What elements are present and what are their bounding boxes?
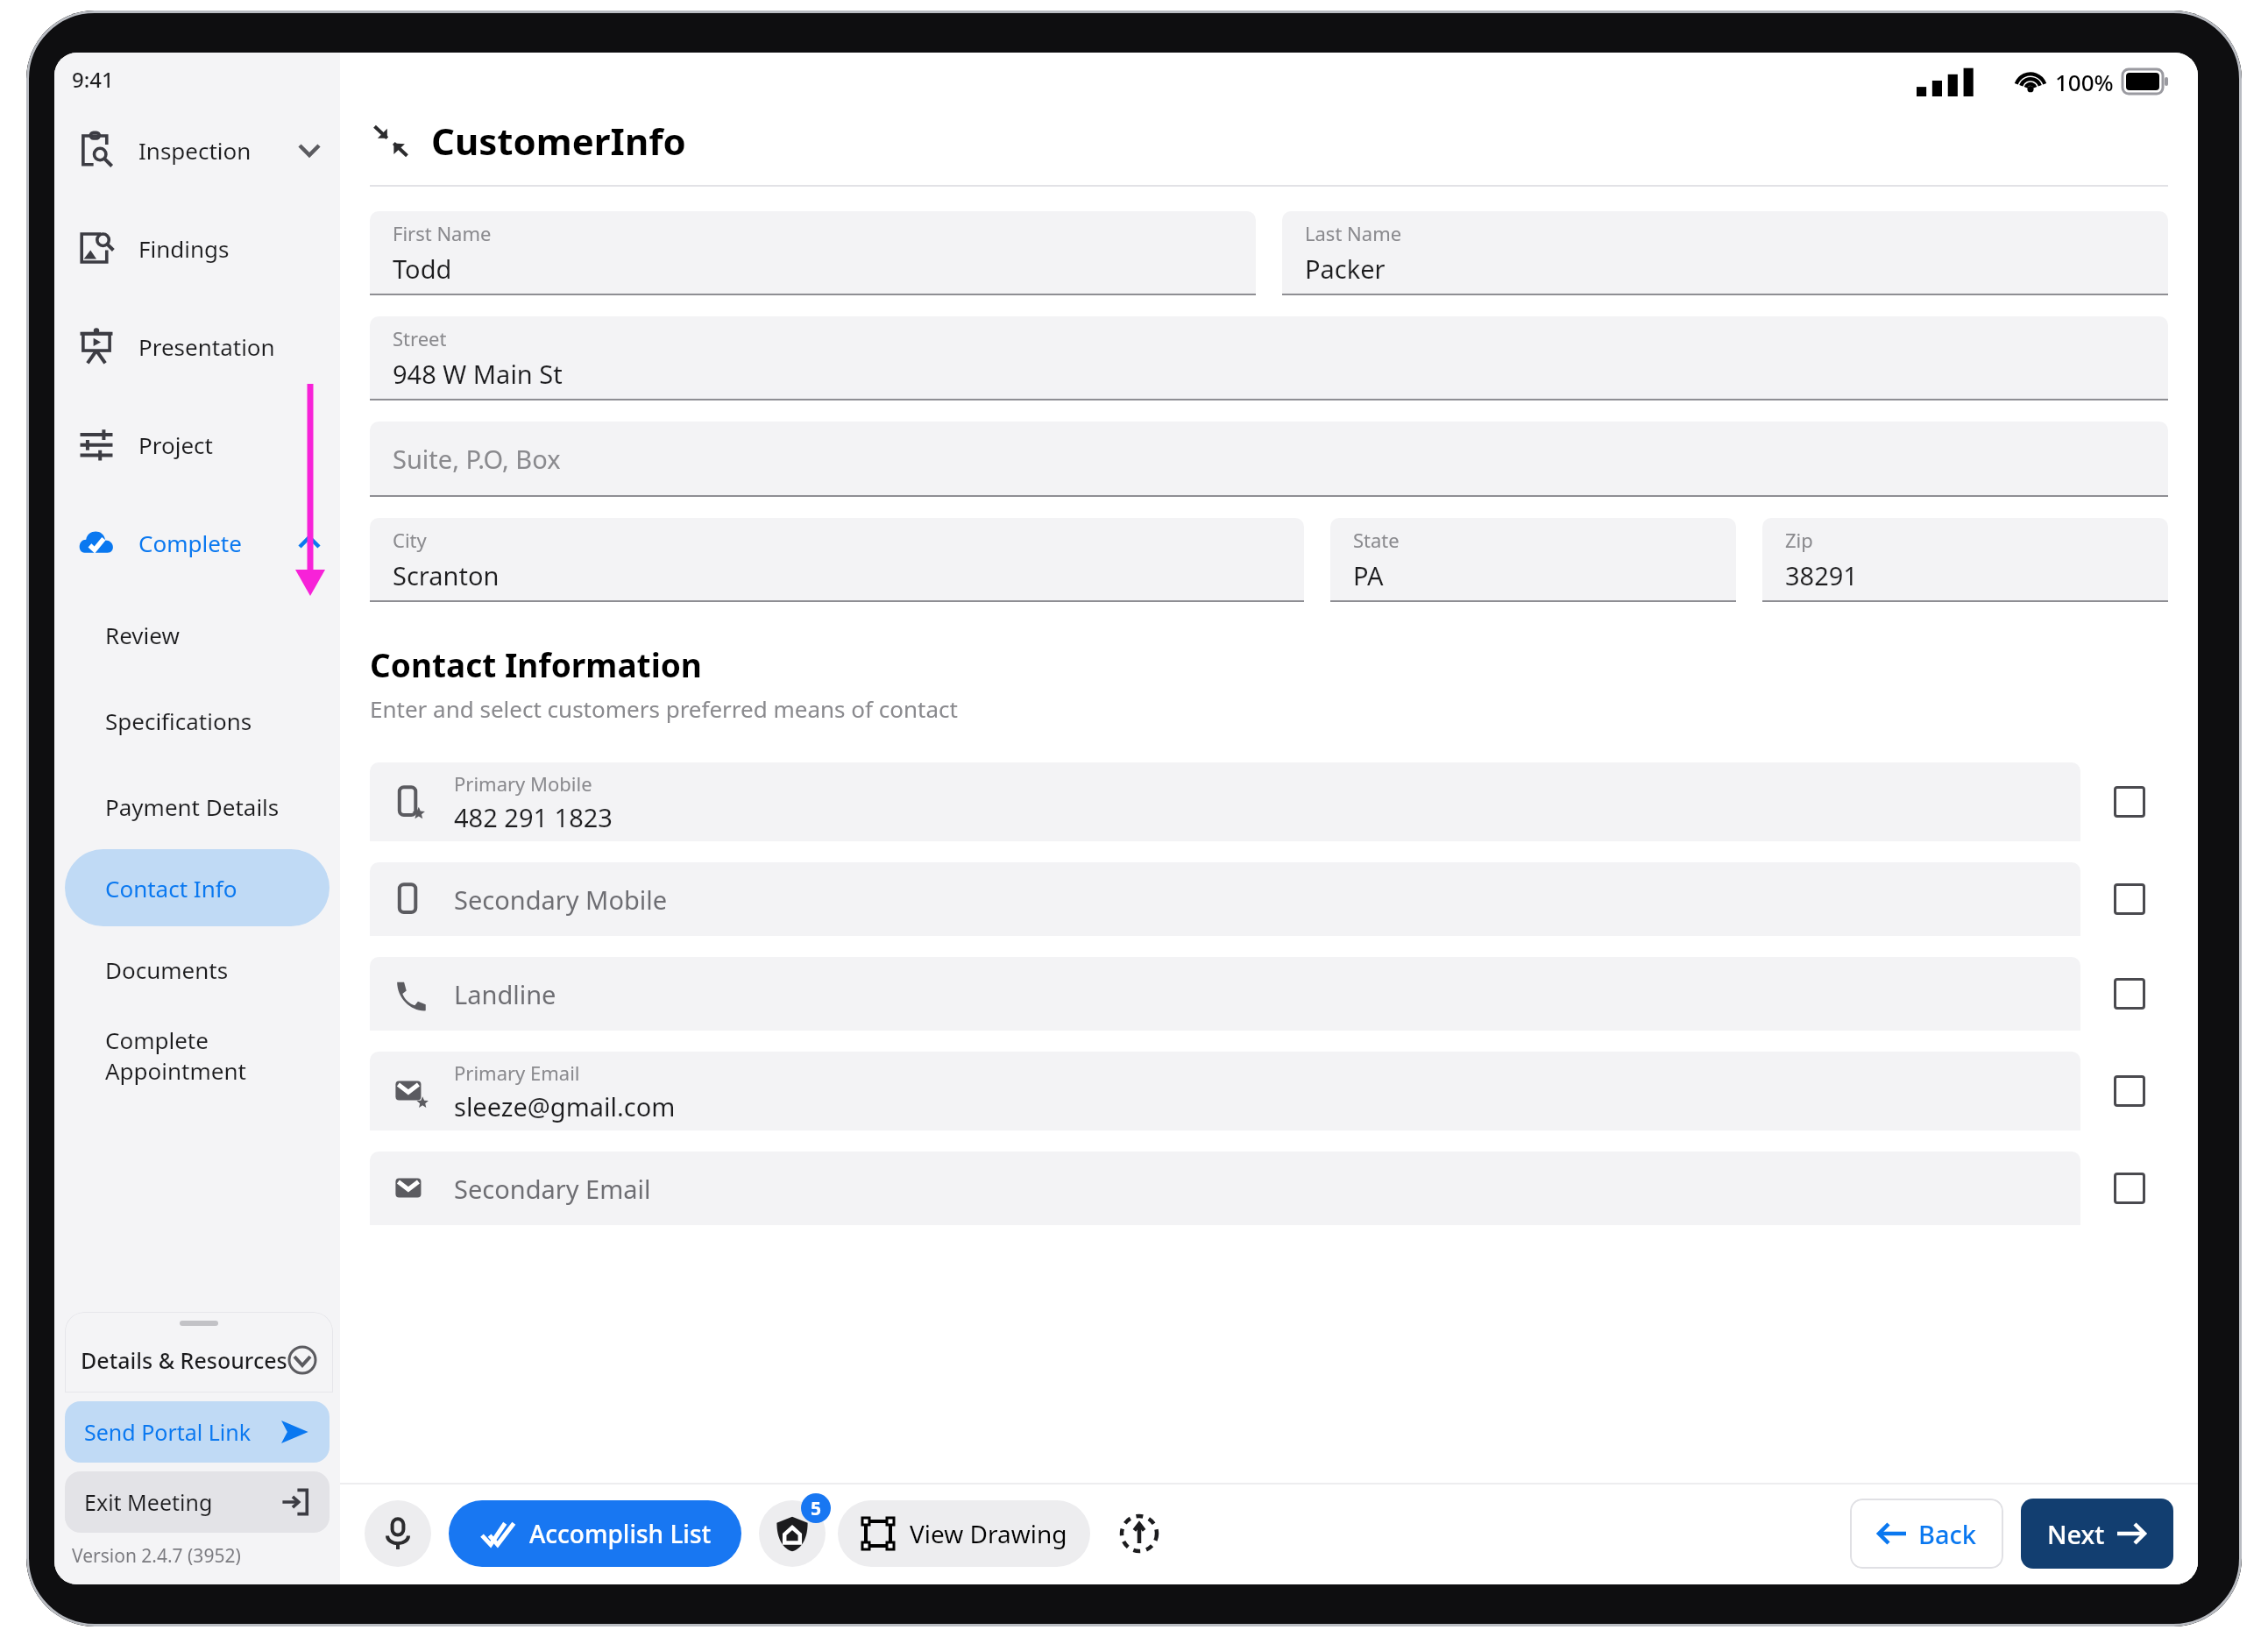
staticText: Exit Meeting <box>84 1487 213 1517</box>
button[interactable]: Last Name <box>1282 211 2168 295</box>
staticText: Suite, P.O, Box <box>393 442 561 476</box>
staticText: Findings <box>138 233 230 264</box>
button[interactable]: First Name <box>370 211 1256 295</box>
staticText: City <box>393 527 427 553</box>
button[interactable]: Select Primary Mobile <box>2110 783 2149 821</box>
staticText: Back <box>1918 1517 1977 1551</box>
button[interactable]: State <box>1330 518 1736 602</box>
button[interactable]: View Drawing <box>838 1500 1090 1567</box>
staticText: Specifications <box>105 705 252 736</box>
button[interactable]: Documents <box>65 926 330 1012</box>
staticText: Complete Appointment <box>105 1024 330 1086</box>
staticText: Street <box>393 325 447 351</box>
button[interactable]: Secondary Email <box>370 1152 2080 1225</box>
staticText: Project <box>138 429 213 460</box>
button[interactable]: Street <box>370 316 2168 400</box>
button[interactable]: Project <box>54 395 340 493</box>
staticText: View Drawing <box>910 1517 1067 1550</box>
staticText: Presentation <box>138 331 275 362</box>
staticText: PA <box>1353 558 1384 592</box>
staticText: CustomerInfo <box>431 116 686 166</box>
staticText: Scranton <box>393 558 500 592</box>
staticText: Enter and select customers preferred mea… <box>370 693 958 724</box>
button[interactable]: Presentation <box>54 297 340 395</box>
button[interactable]: Findings <box>54 199 340 297</box>
button[interactable]: Review <box>65 592 330 677</box>
button[interactable]: Accomplish List <box>449 1500 741 1567</box>
staticText: Payment Details <box>105 791 280 822</box>
staticText: Inspection <box>138 135 252 166</box>
button[interactable]: Landline <box>370 957 2080 1031</box>
staticText: Primary Mobile <box>454 770 592 797</box>
staticText: Contact Information <box>370 642 702 686</box>
button[interactable]: Complete <box>54 493 340 592</box>
button[interactable]: Select Landline <box>2110 974 2149 1013</box>
staticText: 5 <box>811 1496 822 1521</box>
staticText: sleeze@gmail.com <box>454 1089 676 1123</box>
staticText: Todd <box>393 252 452 286</box>
staticText: Secondary Mobile <box>454 882 668 917</box>
button[interactable]: Suite, P.O, Box <box>370 422 2168 497</box>
button[interactable]: Zip <box>1762 518 2168 602</box>
button[interactable]: Primary Mobile <box>370 762 2080 841</box>
button[interactable]: Specifications <box>65 677 330 763</box>
staticText: Documents <box>105 954 229 985</box>
button[interactable]: Primary Email <box>370 1052 2080 1130</box>
button[interactable]: Details & Resources <box>65 1312 333 1393</box>
staticText: 100% <box>2055 67 2114 97</box>
button[interactable]: Select Secondary Mobile <box>2110 880 2149 918</box>
staticText: Zip <box>1785 527 1813 553</box>
staticText: Accomplish List <box>529 1517 712 1550</box>
button[interactable]: Secondary Mobile <box>370 862 2080 936</box>
button[interactable]: Complete Appointment <box>65 1012 330 1098</box>
button[interactable]: Home shield <box>759 1500 826 1567</box>
staticText: Complete <box>138 528 242 558</box>
button[interactable]: Exit Meeting <box>65 1471 330 1533</box>
staticText: State <box>1353 527 1400 553</box>
staticText: Review <box>105 620 180 650</box>
button[interactable]: Select Primary Email <box>2110 1072 2149 1110</box>
staticText: Packer <box>1305 252 1386 286</box>
staticText: 948 W Main St <box>393 357 563 391</box>
staticText: Landline <box>454 977 556 1011</box>
staticText: Details & Resources <box>81 1345 287 1375</box>
button[interactable]: Back <box>1850 1499 2003 1569</box>
staticText: Contact Info <box>105 873 237 904</box>
staticText: 38291 <box>1785 558 1858 592</box>
button[interactable]: City <box>370 518 1304 602</box>
button[interactable]: Voice input <box>365 1500 431 1567</box>
staticText: Last Name <box>1305 220 1402 246</box>
staticText: 9:41 <box>72 65 114 94</box>
staticText: 482 291 1823 <box>454 800 613 834</box>
staticText: Primary Email <box>454 1059 580 1086</box>
button[interactable]: Send Portal Link <box>65 1401 330 1463</box>
button[interactable]: Contact Info <box>65 849 330 926</box>
staticText: First Name <box>393 220 492 246</box>
button[interactable]: Next <box>2021 1499 2173 1569</box>
staticText: Send Portal Link <box>84 1417 252 1447</box>
button[interactable]: Select Secondary Email <box>2110 1169 2149 1208</box>
staticText: Secondary Email <box>454 1172 651 1206</box>
staticText: Next <box>2047 1517 2105 1551</box>
button[interactable]: Sync <box>1106 1500 1173 1567</box>
staticText: Version 2.4.7 (3952) <box>72 1543 241 1569</box>
button[interactable]: Payment Details <box>65 763 330 849</box>
button[interactable]: Inspection <box>54 101 340 199</box>
